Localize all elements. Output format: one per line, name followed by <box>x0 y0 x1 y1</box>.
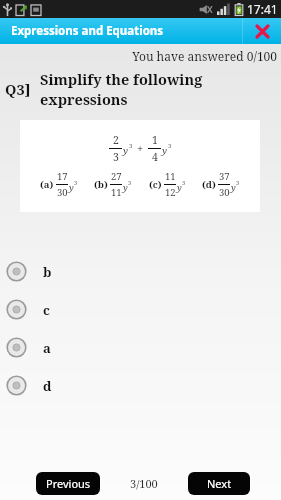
staticText: 3 <box>74 179 78 187</box>
staticText: Previous <box>46 476 91 491</box>
staticText: y <box>231 181 236 193</box>
staticText: y <box>69 181 74 193</box>
staticText: You have answered 0/100 <box>0 48 277 64</box>
staticText: 30 <box>219 186 230 199</box>
staticText: 27 <box>111 170 122 183</box>
staticText: (b) <box>94 178 108 191</box>
staticText: Next <box>207 476 232 491</box>
button[interactable]: Next <box>188 472 250 495</box>
staticText: 3 <box>168 142 172 150</box>
button[interactable]: d <box>0 373 281 398</box>
staticText: 11 <box>111 186 122 199</box>
staticText: 12 <box>165 186 176 199</box>
staticText: 30 <box>57 186 68 199</box>
staticText: 1 <box>152 133 158 147</box>
button[interactable]: b <box>0 259 281 284</box>
staticText: c <box>43 301 50 319</box>
button[interactable]: a <box>0 335 281 360</box>
staticText: 3 <box>236 179 240 187</box>
staticText: 3 <box>128 179 132 187</box>
staticText: d <box>43 377 52 395</box>
button[interactable]: Previous <box>36 472 100 495</box>
staticText: y <box>177 181 182 193</box>
button[interactable]: c <box>0 297 281 322</box>
staticText: 3 <box>113 150 119 164</box>
staticText: 4 <box>152 150 158 164</box>
staticText: 3/100 <box>130 476 158 491</box>
staticText: (a) <box>40 178 54 191</box>
staticText: Q3] <box>5 79 31 99</box>
staticText: 37 <box>219 170 230 183</box>
staticText: b <box>43 263 52 281</box>
button[interactable]: Close <box>243 18 281 44</box>
staticText: Simplify the following expressions <box>40 69 281 109</box>
staticText: 11 <box>165 170 176 183</box>
staticText: 3 <box>182 179 186 187</box>
staticText: y <box>123 144 129 157</box>
staticText: a <box>43 339 51 357</box>
staticText: 2 <box>113 133 119 147</box>
staticText: 17:41 <box>247 1 278 17</box>
staticText: (d) <box>202 178 216 191</box>
staticText: y <box>123 181 128 193</box>
staticText: Expressions and Equations <box>11 23 164 39</box>
staticText: y <box>162 144 168 157</box>
staticText: (c) <box>149 178 162 191</box>
staticText: 3 <box>129 142 133 150</box>
staticText: + <box>137 141 144 156</box>
staticText: 17 <box>57 170 68 183</box>
